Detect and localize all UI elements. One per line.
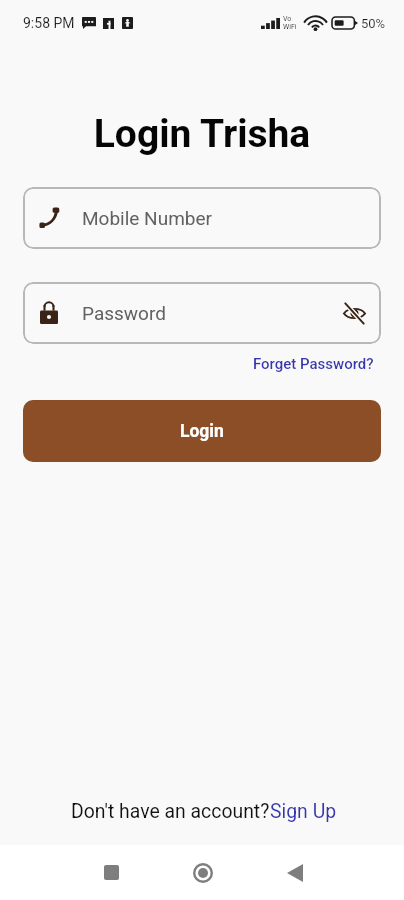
staticText: Forget Password? — [253, 355, 374, 373]
button[interactable]: Recent apps — [81, 845, 142, 900]
button[interactable]: Sign Up — [270, 800, 337, 823]
staticText: Don't have an account? — [71, 800, 270, 823]
button[interactable]: Password — [23, 282, 381, 344]
button[interactable]: Login — [23, 400, 381, 462]
staticText: WiFi — [283, 23, 297, 31]
button[interactable]: Toggle password visibility — [333, 292, 375, 334]
staticText: Vo — [283, 15, 292, 23]
button[interactable]: Forget Password? — [251, 353, 376, 375]
staticText: Login Trisha — [0, 111, 404, 157]
staticText: Mobile Number — [82, 207, 212, 229]
staticText: Password — [82, 302, 166, 324]
button[interactable]: Back — [264, 845, 325, 900]
staticText: 50% — [361, 16, 386, 31]
staticText: Sign Up — [270, 800, 337, 823]
staticText: 9:58 PM — [23, 15, 75, 31]
button[interactable]: Mobile Number — [23, 187, 381, 249]
staticText: Login — [180, 421, 224, 442]
button[interactable]: Home — [172, 845, 233, 900]
